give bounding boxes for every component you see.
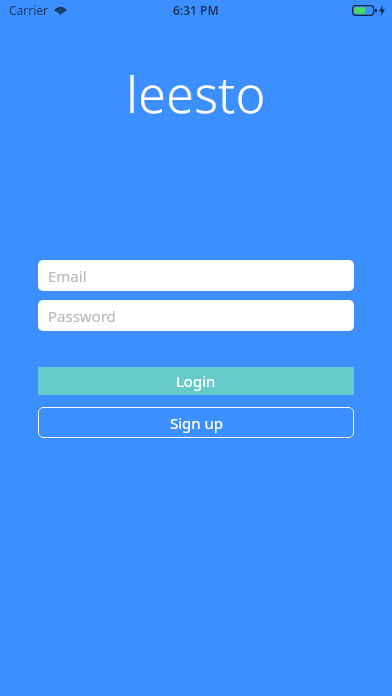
staticText: Sign up <box>170 413 223 433</box>
staticText: 6:31 PM <box>173 2 219 18</box>
staticText: leesto <box>0 60 392 128</box>
other: Battery charging <box>352 5 377 16</box>
staticText: Carrier <box>9 2 49 18</box>
button[interactable]: Login <box>38 367 354 395</box>
staticText: Email <box>48 266 87 286</box>
button[interactable]: Sign up <box>38 407 354 438</box>
button[interactable]: Password <box>38 300 354 331</box>
button[interactable]: Email <box>38 260 354 291</box>
staticText: Login <box>176 371 216 391</box>
staticText: Password <box>48 306 116 326</box>
other: Wi-Fi signal <box>54 5 67 15</box>
